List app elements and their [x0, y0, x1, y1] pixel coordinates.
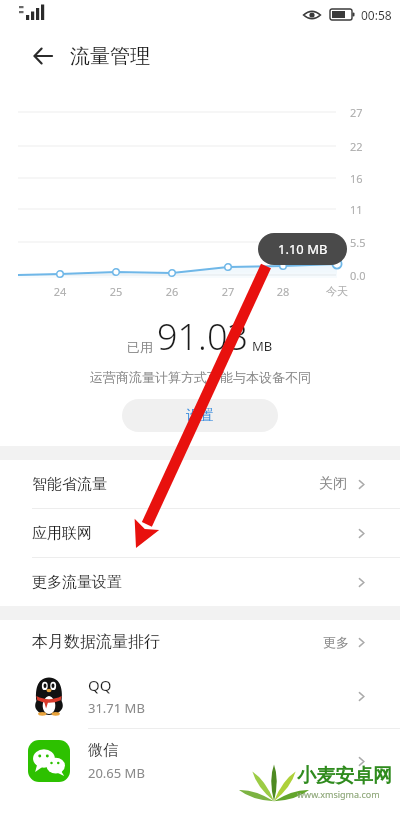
button[interactable]: QQ [0, 664, 400, 729]
staticText: 28 [265, 284, 301, 299]
staticText: 27 [350, 105, 363, 120]
button[interactable]: 更多 [323, 634, 368, 650]
button[interactable]: 更多流量设置 [0, 558, 400, 606]
staticText: MB [252, 337, 273, 355]
staticText: 26 [154, 284, 190, 299]
staticText: 0.0 [350, 268, 366, 283]
staticText: 31.71 MB [88, 699, 145, 717]
button[interactable]: 智能省流量 [0, 460, 400, 509]
staticText: 00:58 [361, 7, 392, 23]
staticText: 微信 [88, 741, 118, 760]
staticText: 91.03 [157, 312, 249, 361]
staticText: QQ [88, 675, 112, 695]
button[interactable]: 微信 [0, 729, 400, 793]
staticText: 已用 [127, 339, 153, 355]
staticText: 5.5 [350, 235, 366, 250]
staticText: 更多流量设置 [32, 573, 122, 592]
staticText: 1.10 MB [278, 240, 328, 258]
staticText: 智能省流量 [32, 475, 107, 494]
staticText: 24 [42, 284, 78, 299]
staticText: 小麦安卓网 [297, 764, 392, 788]
staticText: 运营商流量计算方式可能与本设备不同 [90, 369, 311, 385]
staticText: 16 [350, 171, 363, 186]
staticText: 25 [98, 284, 134, 299]
staticText: 20.65 MB [88, 764, 145, 782]
staticText: 更多 [323, 634, 349, 650]
button[interactable]: 设置 [122, 399, 278, 432]
staticText: 22 [350, 139, 363, 154]
staticText: 27 [210, 284, 246, 299]
staticText: 11 [350, 202, 363, 217]
staticText: 设置 [186, 407, 214, 425]
staticText: www.xmsigma.com [297, 788, 380, 800]
staticText: 流量管理 [70, 44, 150, 69]
button[interactable]: Back [22, 34, 66, 78]
staticText: 关闭 [319, 475, 347, 493]
staticText: 应用联网 [32, 524, 92, 543]
button[interactable]: 应用联网 [0, 509, 400, 558]
staticText: 今天 [319, 284, 355, 298]
staticText: 本月数据流量排行 [32, 632, 160, 652]
